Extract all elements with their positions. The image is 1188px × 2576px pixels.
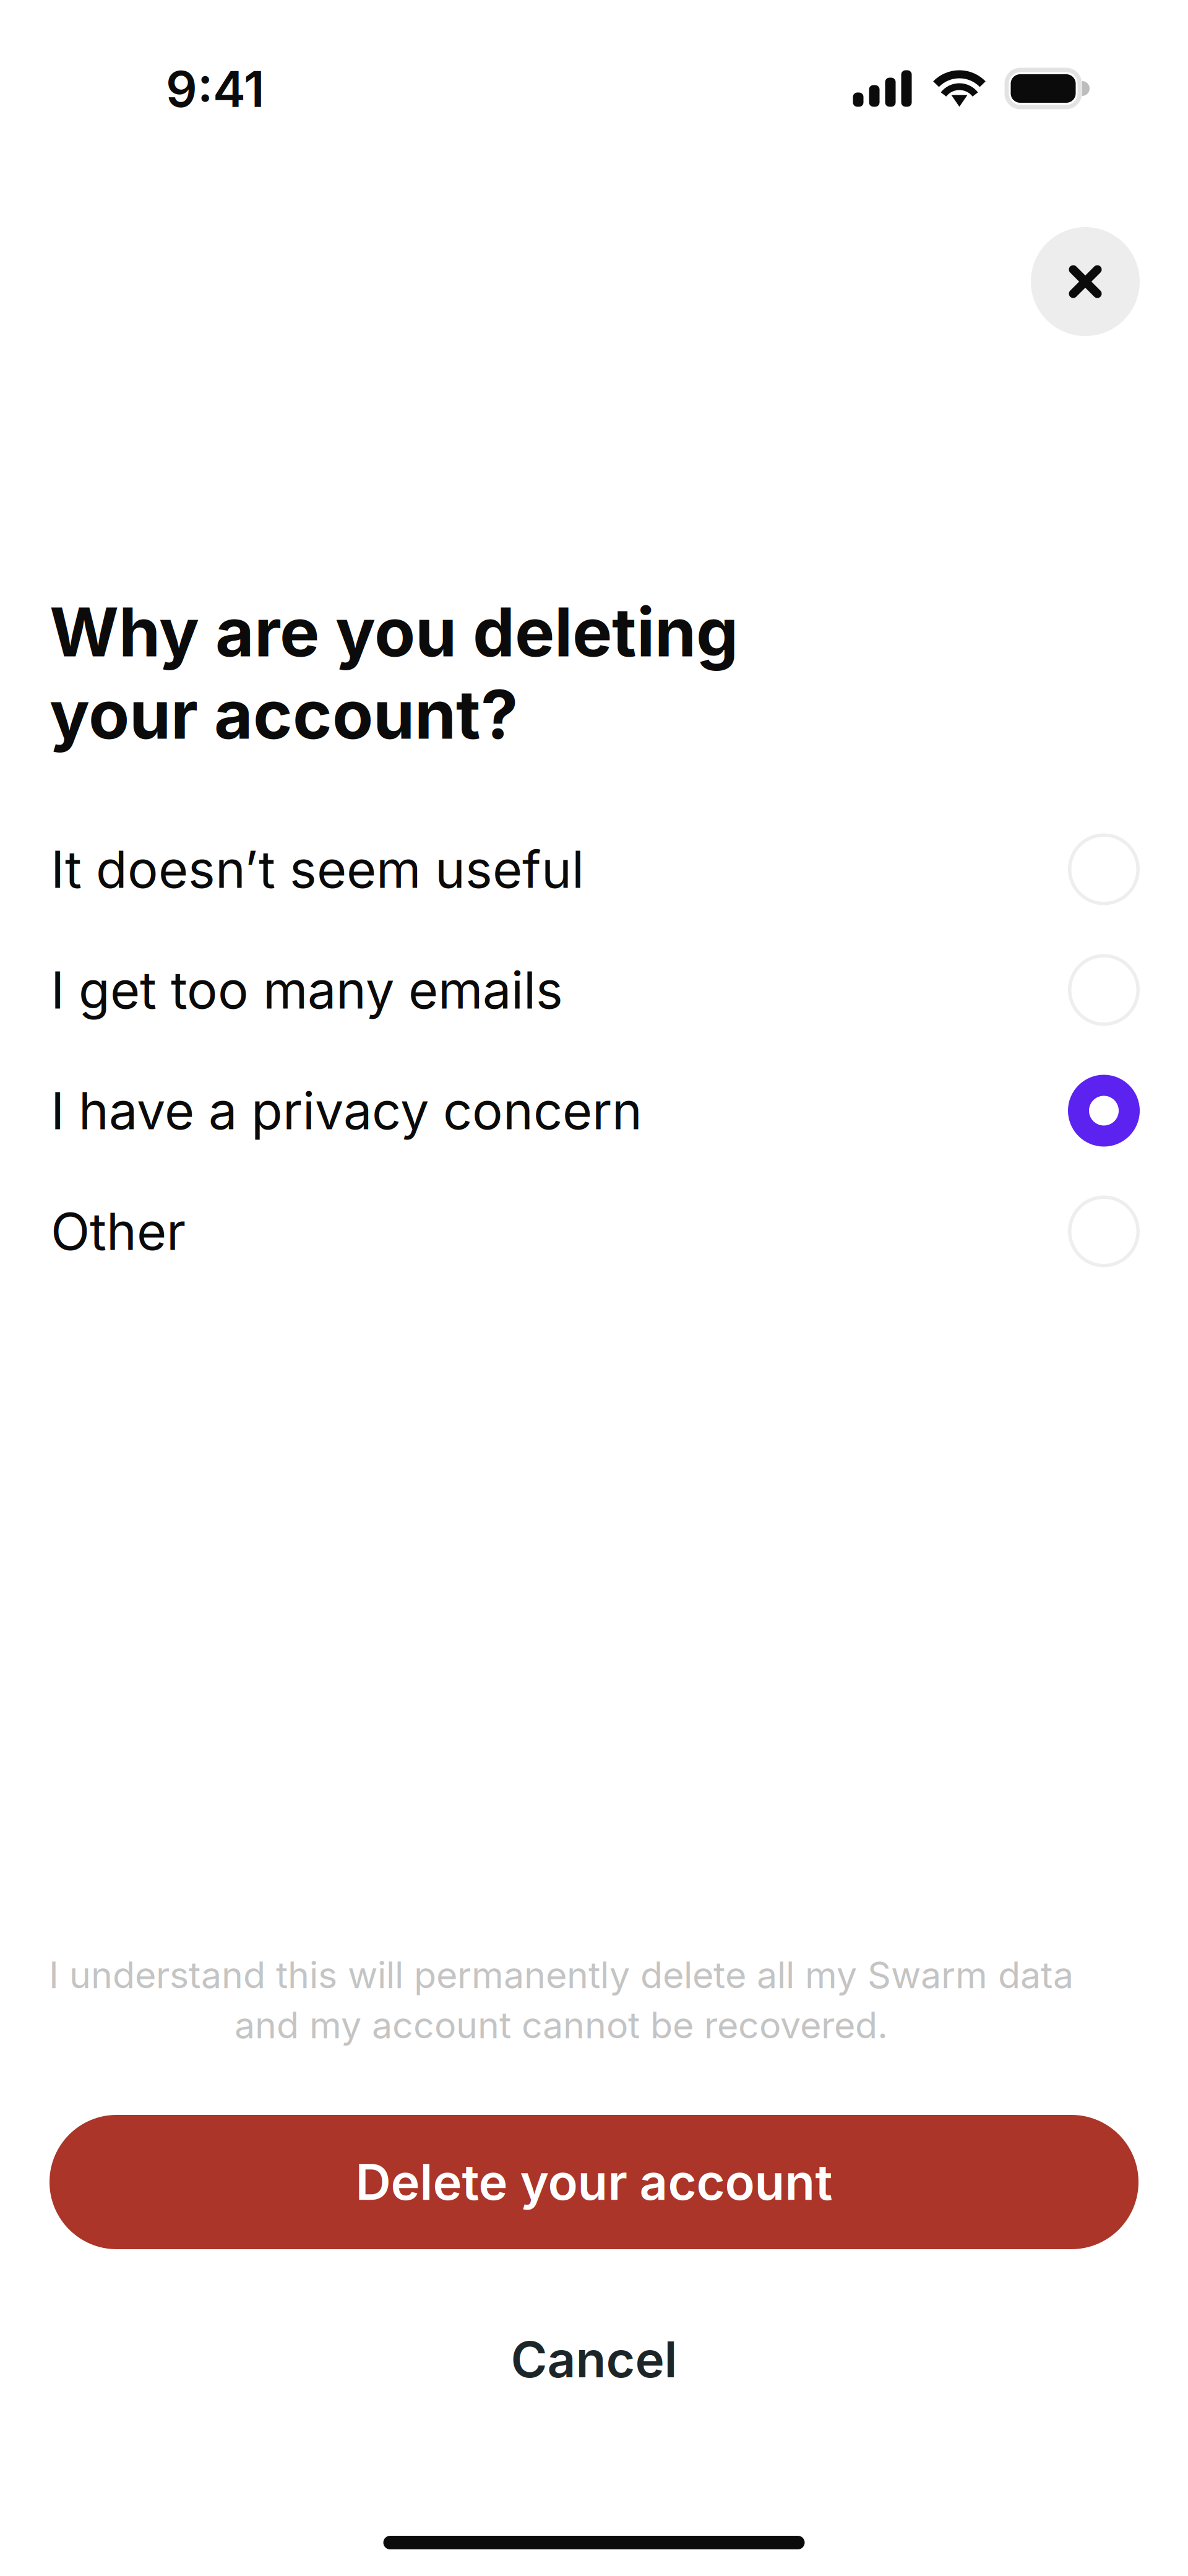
staticText: Delete your account [355,2152,833,2212]
staticText: I have a privacy concern [51,1080,642,1142]
staticText: It doesn’t seem useful [51,838,584,900]
staticText: I get too many emails [51,959,563,1021]
staticText: Why are you deleting [49,592,738,673]
staticText: 9:41 [166,59,265,119]
staticText: Other [51,1200,186,1262]
button[interactable]: Delete your account [49,2115,1138,2249]
staticText: Cancel [511,2329,677,2389]
staticText: and my account cannot be recovered. [235,2003,888,2047]
button[interactable]: I have a privacy concern [0,1050,1188,1171]
staticText: I understand this will permanently delet… [49,1953,1074,1997]
button[interactable]: Cancel [0,2325,1188,2393]
button[interactable]: I get too many emails [0,930,1188,1050]
button[interactable]: It doesn’t seem useful [0,809,1188,930]
button[interactable]: Other [0,1171,1188,1292]
button[interactable]: Close [1031,227,1140,336]
staticText: your account? [49,674,518,755]
